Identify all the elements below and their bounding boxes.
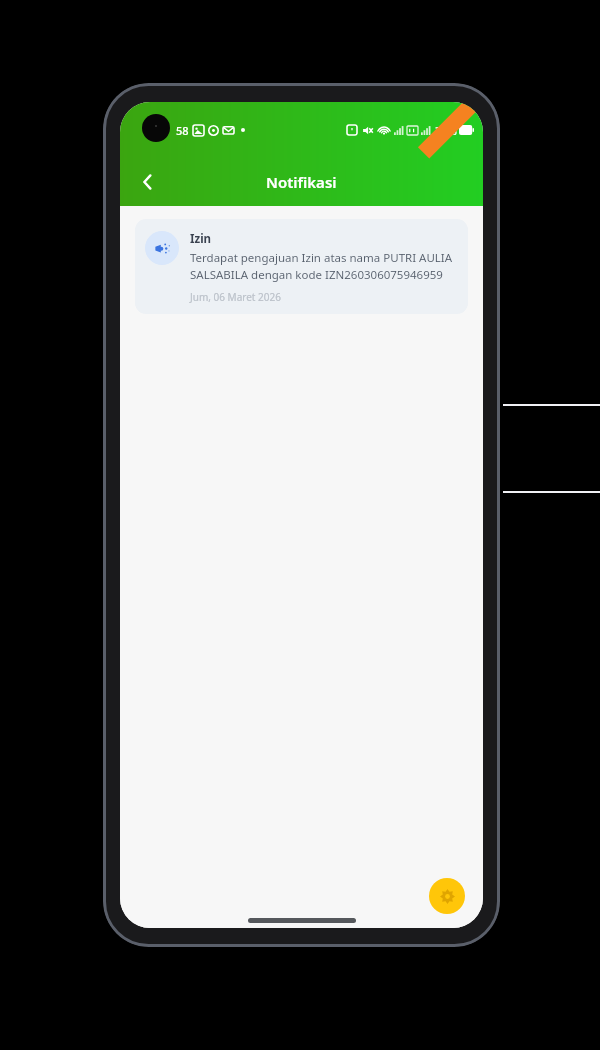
staticText: Izin xyxy=(190,231,212,247)
button[interactable]: Back xyxy=(128,162,168,202)
button[interactable]: Izin xyxy=(135,219,468,314)
staticText: Jum, 06 Maret 2026 xyxy=(190,290,281,304)
staticText: 58 xyxy=(176,123,189,138)
button[interactable]: Settings xyxy=(429,878,465,914)
staticText: 34% xyxy=(435,123,457,138)
staticText: Notifikasi xyxy=(266,172,337,192)
staticText: Terdapat pengajuan Izin atas nama PUTRI … xyxy=(190,250,456,282)
